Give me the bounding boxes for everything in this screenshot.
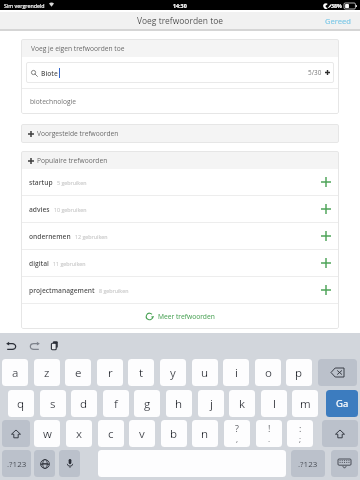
staticText: . — [268, 433, 271, 444]
staticText: , — [236, 433, 239, 444]
button[interactable]: Populaire trefwoorden — [21, 151, 339, 169]
staticText: Voeg je eigen trefwoorden toe — [31, 44, 125, 53]
other: Add advies — [321, 204, 331, 214]
button[interactable]: startup — [21, 169, 339, 195]
button[interactable]: a — [2, 359, 28, 386]
staticText: n — [201, 426, 209, 442]
button[interactable]: Change keyboard — [34, 450, 55, 477]
staticText: r — [108, 365, 113, 381]
button[interactable]: Ga — [326, 390, 358, 417]
button[interactable]: v — [129, 420, 155, 447]
staticText: digital — [29, 259, 49, 268]
button[interactable]: t — [128, 359, 154, 386]
staticText: .?123 — [7, 458, 27, 469]
button[interactable]: : — [287, 420, 313, 447]
button[interactable]: h — [166, 390, 192, 417]
button[interactable]: e — [65, 359, 91, 386]
staticText: x — [76, 426, 83, 442]
staticText: y — [170, 365, 176, 381]
staticText: 11 gebruiken — [53, 260, 86, 267]
button[interactable]: Dictate — [59, 450, 80, 477]
button[interactable]: n — [192, 420, 218, 447]
staticText: g — [144, 396, 151, 412]
staticText: ondernemen — [29, 232, 71, 241]
button[interactable]: x — [66, 420, 92, 447]
staticText: Sim vergrendeld — [4, 2, 45, 9]
button[interactable]: Hide keyboard — [331, 450, 358, 477]
staticText: .?123 — [298, 458, 318, 469]
button[interactable]: digital — [21, 250, 339, 276]
button[interactable]: Voorgestelde trefwoorden — [21, 124, 339, 143]
button[interactable]: w — [34, 420, 60, 447]
button[interactable]: f — [103, 390, 129, 417]
staticText: b — [170, 426, 178, 442]
staticText: c — [108, 426, 114, 442]
staticText: u — [201, 365, 209, 381]
button[interactable]: y — [160, 359, 186, 386]
staticText: 38% — [331, 2, 342, 9]
button[interactable]: Redo — [26, 337, 42, 353]
button[interactable]: ondernemen — [21, 223, 339, 249]
button[interactable]: Backspace — [318, 359, 357, 386]
button[interactable]: advies — [21, 196, 339, 222]
staticText: 8 gebruiken — [99, 287, 129, 294]
staticText: Populaire trefwoorden — [37, 156, 108, 165]
button[interactable]: ! — [256, 420, 282, 447]
staticText: advies — [29, 205, 50, 214]
other: Add ondernemen — [321, 231, 331, 241]
button[interactable]: Meer trefwoorden — [21, 304, 339, 329]
button[interactable]: i — [223, 359, 249, 386]
button[interactable]: z — [34, 359, 60, 386]
staticText: m — [300, 396, 311, 412]
staticText: 12 gebruiken — [75, 233, 108, 240]
button[interactable]: Biote — [26, 62, 334, 83]
button[interactable]: Shift — [2, 420, 30, 447]
button[interactable]: Shift — [322, 420, 358, 447]
button[interactable]: o — [255, 359, 281, 386]
staticText: Voeg trefwoorden toe — [137, 15, 224, 27]
button[interactable]: u — [192, 359, 218, 386]
staticText: s — [50, 396, 56, 412]
staticText: : — [299, 422, 302, 434]
staticText: q — [17, 396, 25, 412]
staticText: t — [139, 365, 144, 381]
staticText: p — [295, 365, 303, 381]
button[interactable]: projectmanagement — [21, 277, 339, 303]
staticText: e — [75, 365, 82, 381]
button[interactable]: m — [292, 390, 318, 417]
button[interactable]: k — [229, 390, 255, 417]
button[interactable]: ? — [224, 420, 250, 447]
staticText: d — [80, 396, 88, 412]
staticText: i — [235, 365, 238, 381]
button[interactable]: .?123 — [2, 450, 31, 477]
button[interactable]: p — [286, 359, 312, 386]
button[interactable]: d — [71, 390, 97, 417]
button[interactable]: r — [97, 359, 123, 386]
staticText: Gereed — [325, 16, 351, 26]
staticText: h — [175, 396, 183, 412]
staticText: j — [210, 396, 213, 412]
button[interactable]: q — [8, 390, 34, 417]
button[interactable]: g — [134, 390, 160, 417]
staticText: w — [43, 426, 52, 442]
button[interactable]: Paste — [47, 337, 63, 353]
button[interactable]: .?123 — [291, 450, 325, 477]
staticText: 14:30 — [173, 2, 187, 9]
button[interactable]: c — [98, 420, 124, 447]
button[interactable]: Voeg je eigen trefwoorden toe — [21, 39, 339, 57]
staticText: ! — [268, 422, 271, 434]
staticText: projectmanagement — [29, 286, 95, 295]
button[interactable]: s — [40, 390, 66, 417]
button[interactable]: biotechnologie — [21, 89, 339, 114]
staticText: biotechnologie — [30, 97, 76, 106]
staticText: Biote — [41, 69, 58, 78]
button[interactable]: Undo — [4, 337, 20, 353]
button[interactable]: Gereed — [316, 13, 360, 29]
button[interactable]: l — [261, 390, 287, 417]
staticText: o — [265, 365, 272, 381]
staticText: Voorgestelde trefwoorden — [37, 129, 119, 138]
button[interactable]: b — [161, 420, 187, 447]
button[interactable]: j — [198, 390, 224, 417]
staticText: k — [239, 396, 246, 412]
